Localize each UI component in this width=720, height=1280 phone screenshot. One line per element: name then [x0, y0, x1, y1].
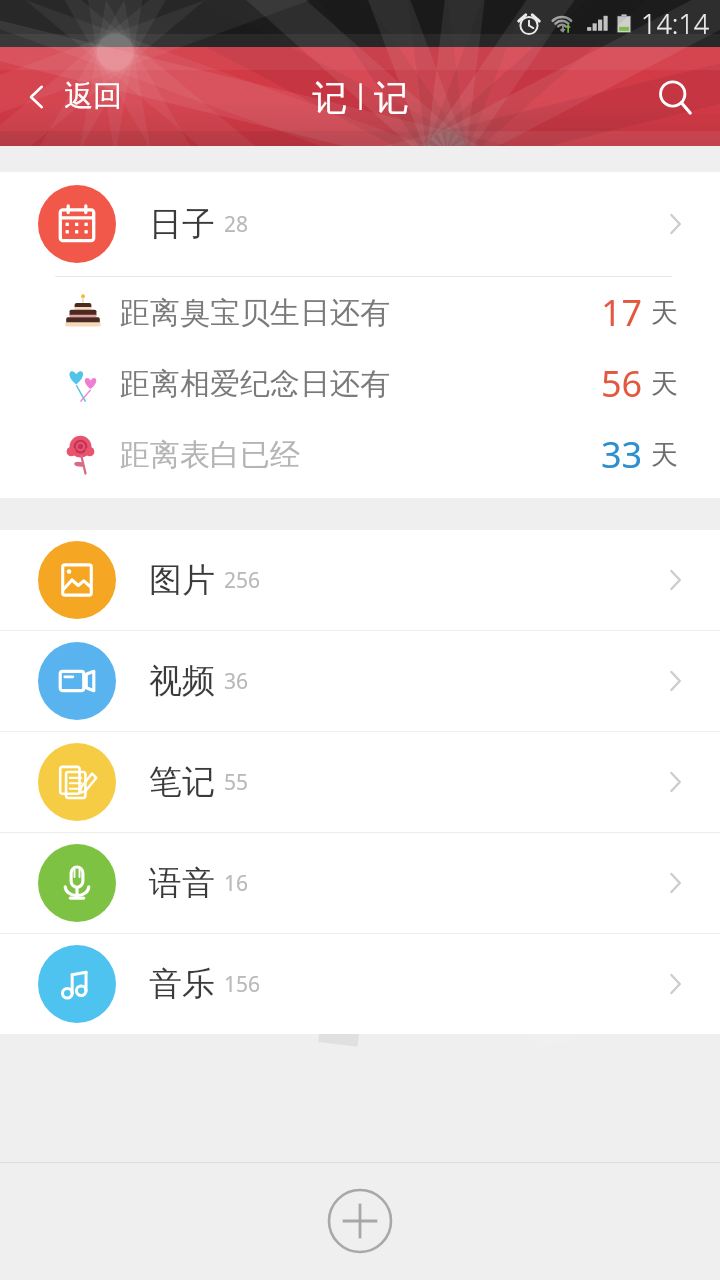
- button[interactable]: 笔记: [0, 732, 720, 832]
- button[interactable]: 返回: [0, 47, 140, 146]
- button[interactable]: Search: [630, 47, 720, 146]
- staticText: 语音: [149, 862, 215, 904]
- button[interactable]: Add: [323, 1184, 397, 1258]
- button[interactable]: 距离表白已经: [0, 419, 720, 490]
- staticText: 音乐: [149, 963, 215, 1005]
- staticText: 256: [224, 566, 261, 595]
- staticText: 天: [651, 367, 678, 401]
- staticText: 日子: [149, 203, 215, 245]
- button[interactable]: 距离相爱纪念日还有: [0, 348, 720, 419]
- button[interactable]: 图片: [0, 530, 720, 630]
- staticText: 笔记: [149, 761, 215, 803]
- staticText: 天: [651, 296, 678, 330]
- staticText: 图片: [149, 559, 215, 601]
- staticText: 17: [601, 288, 643, 337]
- button[interactable]: 语音: [0, 833, 720, 933]
- button[interactable]: 距离臭宝贝生日还有: [0, 277, 720, 348]
- staticText: 33: [601, 430, 643, 479]
- button[interactable]: 视频: [0, 631, 720, 731]
- staticText: 距离臭宝贝生日还有: [120, 294, 390, 332]
- staticText: 156: [224, 970, 261, 999]
- button[interactable]: 日子: [0, 172, 720, 276]
- staticText: 天: [651, 438, 678, 472]
- staticText: 距离相爱纪念日还有: [120, 365, 390, 403]
- staticText: 视频: [149, 660, 215, 702]
- staticText: 返回: [64, 78, 122, 115]
- staticText: 36: [224, 667, 249, 696]
- staticText: 56: [601, 359, 643, 408]
- staticText: 记 l 记: [312, 73, 409, 121]
- staticText: 55: [224, 768, 249, 797]
- button[interactable]: 音乐: [0, 934, 720, 1034]
- staticText: 16: [224, 869, 249, 898]
- staticText: 28: [224, 210, 249, 239]
- staticText: 14:14: [641, 5, 710, 42]
- staticText: 距离表白已经: [120, 436, 300, 474]
